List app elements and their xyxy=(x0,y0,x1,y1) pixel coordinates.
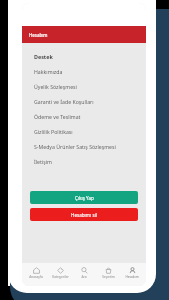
button[interactable]: Üyelik Sözleşmesi xyxy=(22,79,146,94)
staticText: Hesabım xyxy=(125,275,139,279)
other: Anasayfa xyxy=(33,267,40,274)
button[interactable]: Hesabım xyxy=(22,26,146,43)
button[interactable]: İletişim xyxy=(22,154,146,169)
staticText: Sepetim xyxy=(102,275,115,279)
staticText: Hakkımızda xyxy=(34,68,63,75)
staticText: Hesabımı sil xyxy=(71,212,98,218)
button[interactable]: Çıkış Yap xyxy=(30,191,138,204)
button[interactable]: Ödeme ve Teslimat xyxy=(22,109,146,124)
other: Kategoriler xyxy=(57,267,64,274)
other: Sepetim xyxy=(105,267,112,274)
staticText: Garanti ve İade Koşulları xyxy=(34,98,94,105)
staticText: Çıkış Yap xyxy=(75,195,94,201)
button[interactable]: Sepetim xyxy=(96,267,120,279)
staticText: Ödeme ve Teslimat xyxy=(34,113,81,120)
staticText: Hesabım xyxy=(29,32,48,38)
button[interactable]: Ara xyxy=(72,267,96,279)
staticText: Gizlilik Politikası xyxy=(34,128,73,135)
staticText: Kategoriler xyxy=(52,275,69,279)
button[interactable]: Hakkımızda xyxy=(22,64,146,79)
button[interactable]: Kategoriler xyxy=(48,267,72,279)
staticText: Ara xyxy=(81,275,87,279)
button[interactable]: Anasayfa xyxy=(24,267,48,279)
button[interactable]: Hesabımı sil xyxy=(30,208,138,221)
staticText: Üyelik Sözleşmesi xyxy=(34,83,77,90)
button[interactable]: Hesabım xyxy=(120,267,144,279)
other: Ara xyxy=(81,267,88,274)
button[interactable]: Garanti ve İade Koşulları xyxy=(22,94,146,109)
staticText: İletişim xyxy=(34,158,52,165)
staticText: S-Medya Ürünler Satış Sözleşmesi xyxy=(34,143,116,150)
staticText: Anasayfa xyxy=(29,275,43,279)
other: Hesabım xyxy=(129,267,136,274)
button[interactable]: Gizlilik Politikası xyxy=(22,124,146,139)
button[interactable]: S-Medya Ürünler Satış Sözleşmesi xyxy=(22,139,146,154)
staticText: Destek xyxy=(34,53,53,60)
